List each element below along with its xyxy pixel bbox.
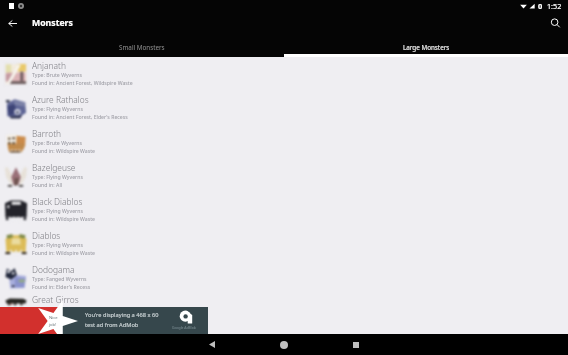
button[interactable]: Bazelgeuse <box>0 159 568 193</box>
staticText: Type: Flying Wyverns <box>32 173 83 180</box>
button[interactable]: Search <box>542 14 568 32</box>
staticText: Found in: Wildspire Waste <box>32 249 95 256</box>
staticText: Type: Brute Wyverns <box>32 139 83 146</box>
staticText: You're displaying a 468 x 60 <box>85 311 159 319</box>
staticText: Found in: Wildspire Waste <box>32 147 95 154</box>
button[interactable]: Navigate up <box>0 14 24 32</box>
staticText: 1:52 <box>547 1 562 11</box>
button[interactable]: Small Monsters <box>0 32 284 57</box>
staticText: Found in: Ancient Forest, Elder's Recess <box>32 113 128 120</box>
staticText: Type: Flying Wyverns <box>32 105 83 112</box>
staticText: Barroth <box>32 128 62 139</box>
staticText: Nice <box>49 315 58 321</box>
staticText: Small Monsters <box>119 43 165 52</box>
button[interactable]: Azure Rathalos <box>0 91 568 125</box>
staticText: Anjanath <box>32 60 66 71</box>
button[interactable]: Black Diablos <box>0 193 568 227</box>
staticText: Great Girros <box>32 294 79 305</box>
button[interactable]: Anjanath <box>0 57 568 91</box>
staticText: Found in: Ancient Forest, Wildspire Wast… <box>32 79 133 86</box>
button[interactable]: Large Monsters <box>284 32 568 57</box>
staticText: test ad from AdMob <box>85 321 139 329</box>
staticText: Type: Flying Wyverns <box>32 241 83 248</box>
button[interactable]: Recent apps <box>345 334 367 355</box>
staticText: Found in: Wildspire Waste <box>32 215 95 222</box>
staticText: Found in: All <box>32 181 63 188</box>
staticText: Found in: Elder's Recess <box>32 283 91 290</box>
staticText: Google AdMob <box>172 325 196 330</box>
button[interactable]: Dodogama <box>0 261 568 295</box>
staticText: Azure Rathalos <box>32 94 89 105</box>
button[interactable]: Great Girros <box>0 295 568 307</box>
staticText: Type: Flying Wyverns <box>32 207 83 214</box>
staticText: job! <box>49 322 57 328</box>
button[interactable]: Advertisement <box>0 307 568 334</box>
staticText: Type: Brute Wyverns <box>32 71 83 78</box>
button[interactable]: Barroth <box>0 125 568 159</box>
button[interactable]: Home <box>273 334 295 355</box>
staticText: Type: Fanged Wyverns <box>32 305 87 306</box>
staticText: Diablos <box>32 230 61 241</box>
staticText: Bazelgeuse <box>32 162 76 173</box>
button[interactable]: Back <box>201 334 223 355</box>
staticText: Dodogama <box>32 264 75 275</box>
button[interactable]: Diablos <box>0 227 568 261</box>
staticText: Black Diablos <box>32 196 83 207</box>
staticText: 0 <box>538 1 543 11</box>
staticText: Monsters <box>32 17 73 29</box>
staticText: Large Monsters <box>403 43 450 52</box>
staticText: Type: Fanged Wyverns <box>32 275 87 282</box>
